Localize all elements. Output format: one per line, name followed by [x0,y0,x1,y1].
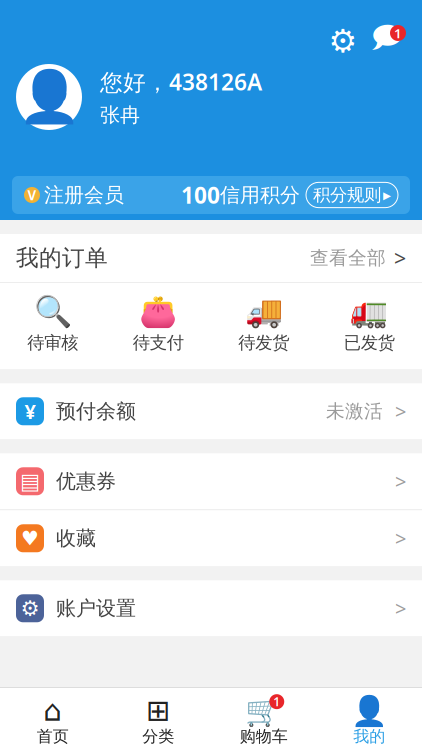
staticText: ⌂ [43,694,62,727]
staticText: 🚛 [350,294,388,329]
button[interactable]: ⚙ [0,580,422,636]
staticText: 1 [394,24,402,42]
staticText: 账户设置 [56,596,136,621]
button[interactable]: 🔍 [0,297,105,355]
staticText: > [395,595,406,622]
button[interactable]: 🚛 [316,297,422,355]
button[interactable]: ▤ [0,453,422,509]
staticText: 注册会员 [44,183,124,207]
staticText: > [395,468,406,495]
staticText: 1 [273,694,280,710]
button[interactable]: ⊞ [105,698,211,746]
staticText: ♥ [21,527,39,550]
staticText: 信用积分 [220,183,300,207]
staticText: 🛒 [245,694,282,727]
staticText: ⚙ [20,596,39,620]
button[interactable]: ⌂ [0,698,105,746]
staticText: 待审核 [27,332,78,353]
button[interactable]: V [0,176,422,214]
staticText: 购物车 [240,727,288,746]
staticText: 收藏 [56,526,96,551]
button[interactable]: 🛒 [211,698,316,746]
staticText: 查看全部 [310,246,386,269]
staticText: 未激活 [326,400,383,423]
staticText: > [395,525,406,552]
staticText: ⊞ [146,694,171,727]
staticText: 待发货 [238,332,289,353]
staticText: > [394,244,406,272]
button[interactable]: 👛 [105,297,211,355]
staticText: 👛 [139,294,177,329]
button[interactable]: 我的订单 [0,234,422,282]
staticText: 预付余额 [56,399,136,424]
staticText: 👤 [351,694,388,727]
staticText: 我的订单 [16,244,108,272]
button[interactable]: 👤 [316,698,422,746]
staticText: ▤ [20,469,40,493]
staticText: ▸ [383,186,391,204]
staticText: 优惠券 [56,469,116,494]
staticText: 分类 [142,727,174,746]
staticText: 🚚 [245,294,283,329]
button[interactable]: Settings [328,26,358,56]
staticText: 🔍 [34,294,72,329]
staticText: 已发货 [344,332,395,353]
staticText: ⚙ [328,23,357,59]
button[interactable]: Messages [372,26,402,56]
staticText: 张冉 [100,103,140,127]
staticText: V [27,186,36,204]
staticText: 👤 [17,68,80,126]
staticText: 您好，438126A [100,67,262,97]
staticText: 100 [181,180,220,210]
staticText: 积分规则 [313,184,381,206]
staticText: 首页 [37,727,69,746]
staticText: 我的 [353,727,385,746]
button[interactable]: 🚚 [211,297,316,355]
button[interactable]: ¥ [0,383,422,439]
staticText: 🗩 [370,17,403,65]
staticText: > [395,398,406,425]
button[interactable]: ♥ [0,510,422,566]
staticText: 待支付 [133,332,184,353]
staticText: ¥ [24,398,35,425]
